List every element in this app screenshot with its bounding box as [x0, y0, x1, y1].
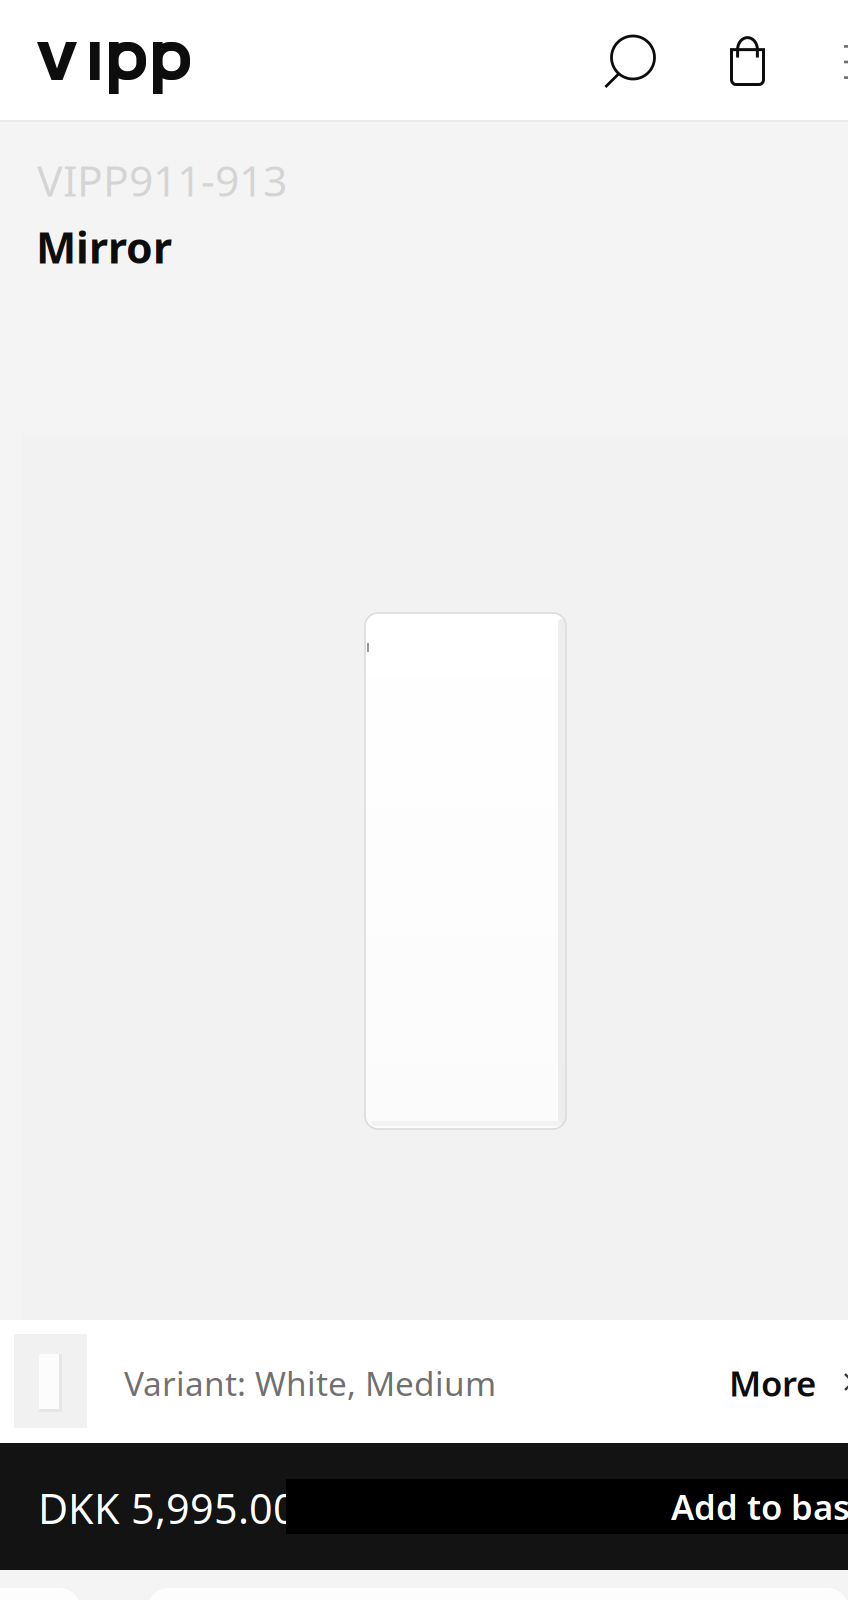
button[interactable]: Variant: White, Medium [0, 1320, 848, 1443]
staticText: Add to basket [671, 1483, 848, 1529]
staticText: Variant: White, Medium [124, 1361, 496, 1405]
button[interactable]: Vipp home [0, 0, 194, 120]
staticText: DKK 5,995.00 [38, 1481, 297, 1535]
staticText: Mirror [36, 219, 172, 275]
button[interactable]: Search [0, 0, 104, 120]
staticText: More [729, 1360, 816, 1406]
button[interactable]: Add to basket [0, 1443, 562, 1498]
staticText: VIPP911-913 [37, 152, 287, 208]
button[interactable]: Basket [0, 0, 96, 120]
